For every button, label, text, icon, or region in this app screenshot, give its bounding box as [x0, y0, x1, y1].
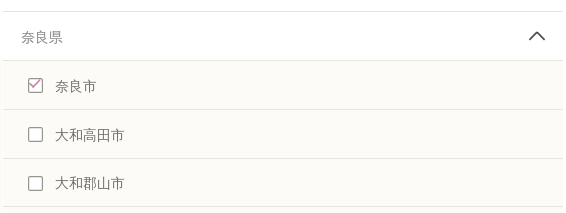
button[interactable]	[0, 206, 563, 213]
button[interactable]: 大和郡山市	[0, 158, 563, 206]
staticText: 奈良市	[55, 78, 97, 96]
staticText: 大和郡山市	[55, 175, 125, 193]
button[interactable]: 奈良市	[0, 60, 563, 109]
button[interactable]: 大和高田市	[0, 109, 563, 158]
button[interactable]: Collapse 奈良県	[524, 23, 550, 49]
staticText: 大和高田市	[55, 127, 125, 145]
button[interactable]: 奈良県	[0, 11, 563, 60]
staticText: 奈良県	[21, 29, 63, 47]
